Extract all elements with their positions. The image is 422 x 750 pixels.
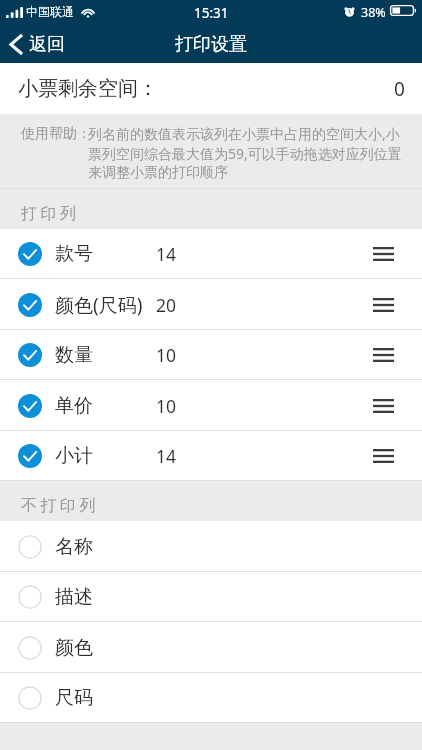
staticText: 0 bbox=[394, 76, 405, 102]
staticText: 14 bbox=[156, 444, 177, 468]
staticText: 款号 bbox=[55, 242, 93, 266]
staticText: 小计 bbox=[55, 444, 93, 468]
button[interactable]: Uncheck 数量 bbox=[0, 330, 422, 380]
staticText: 15:31 bbox=[194, 4, 229, 22]
button[interactable]: Uncheck 小计 bbox=[0, 431, 422, 481]
staticText: 使用帮助： bbox=[21, 125, 91, 143]
button[interactable]: Uncheck 数量 bbox=[6, 331, 54, 379]
button[interactable]: Reorder 款号 bbox=[360, 232, 406, 276]
button[interactable]: Uncheck 单价 bbox=[0, 380, 422, 431]
staticText: 不打印列 bbox=[21, 496, 99, 516]
button[interactable]: 返回 bbox=[0, 26, 422, 63]
button[interactable]: Reorder 颜色(尺码) bbox=[360, 283, 406, 327]
button[interactable]: Check 颜色 bbox=[0, 622, 422, 673]
staticText: 14 bbox=[156, 242, 177, 266]
button[interactable]: Check 描述 bbox=[0, 572, 422, 622]
staticText: 38% bbox=[361, 4, 386, 21]
button[interactable]: Uncheck 款号 bbox=[0, 229, 422, 279]
button[interactable]: Uncheck 单价 bbox=[6, 382, 54, 430]
staticText: 列名前的数值表示该列在小票中占用的空间大小,小票列空间综合最大值为59,可以手动… bbox=[88, 124, 405, 181]
staticText: 打印设置 bbox=[175, 33, 247, 56]
staticText: 数量 bbox=[55, 343, 93, 367]
staticText: 10 bbox=[156, 394, 177, 418]
button[interactable]: Check 颜色 bbox=[6, 624, 54, 672]
button[interactable]: Uncheck 颜色(尺码) bbox=[0, 279, 422, 330]
button[interactable]: Uncheck 款号 bbox=[6, 230, 54, 278]
button[interactable]: Reorder 数量 bbox=[360, 333, 406, 377]
button[interactable]: Check 名称 bbox=[0, 521, 422, 572]
staticText: 名称 bbox=[55, 535, 93, 559]
button[interactable]: Reorder 单价 bbox=[360, 384, 406, 428]
staticText: 20 bbox=[156, 293, 177, 317]
button[interactable]: Check 尺码 bbox=[0, 673, 422, 723]
staticText: 打印列 bbox=[21, 204, 80, 224]
button[interactable]: Reorder 小计 bbox=[360, 434, 406, 478]
button[interactable]: Check 描述 bbox=[6, 573, 54, 621]
button[interactable]: Uncheck 颜色(尺码) bbox=[6, 281, 54, 329]
staticText: 中国联通 bbox=[26, 4, 74, 19]
button[interactable]: Check 名称 bbox=[6, 523, 54, 571]
staticText: 描述 bbox=[55, 585, 93, 609]
staticText: 单价 bbox=[55, 394, 93, 418]
staticText: 颜色 bbox=[55, 636, 93, 660]
staticText: 尺码 bbox=[55, 686, 93, 710]
button[interactable]: Check 尺码 bbox=[6, 674, 54, 722]
staticText: 颜色(尺码) bbox=[55, 292, 143, 318]
staticText: 小票剩余空间： bbox=[18, 76, 158, 101]
staticText: 返回 bbox=[29, 33, 65, 56]
button[interactable]: Uncheck 小计 bbox=[6, 432, 54, 480]
staticText: 10 bbox=[156, 343, 177, 367]
